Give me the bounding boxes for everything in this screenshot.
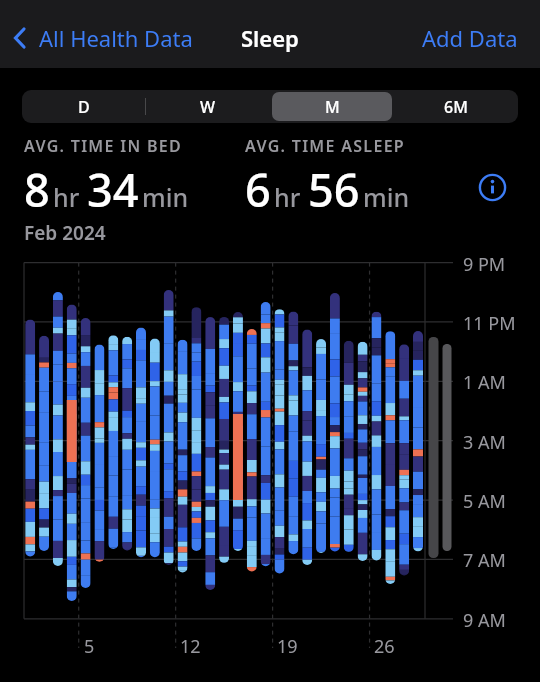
staticText: 8 <box>24 159 50 220</box>
staticText: min <box>363 180 410 214</box>
button[interactable]: All Health Data <box>13 23 193 53</box>
staticText: AVG. TIME IN BED <box>24 135 182 157</box>
button[interactable]: M <box>272 92 392 121</box>
staticText: 7 AM <box>463 548 506 573</box>
staticText: Sleep <box>241 23 299 53</box>
staticText: 9 PM <box>463 252 506 277</box>
staticText: 19 <box>277 634 298 659</box>
staticText: 26 <box>374 634 395 659</box>
staticText: AVG. TIME ASLEEP <box>245 135 406 157</box>
button[interactable]: W <box>148 92 268 121</box>
staticText: min <box>142 180 189 214</box>
staticText: 6M <box>444 96 468 118</box>
staticText: W <box>200 96 216 118</box>
staticText: 5 AM <box>463 489 506 514</box>
button[interactable]: 6M <box>396 92 516 121</box>
staticText: D <box>78 96 90 118</box>
staticText: hr <box>274 180 301 214</box>
button[interactable]: D <box>24 92 143 121</box>
staticText: 12 <box>180 634 201 659</box>
staticText: hr <box>53 180 80 214</box>
staticText: 3 AM <box>463 430 506 455</box>
staticText: 56 <box>308 159 360 220</box>
staticText: M <box>325 96 340 118</box>
staticText: 6 <box>245 159 271 220</box>
staticText: 34 <box>87 159 139 220</box>
staticText: 1 AM <box>463 370 506 395</box>
staticText: 9 AM <box>463 608 506 633</box>
staticText: Add Data <box>422 23 518 53</box>
staticText: 11 PM <box>463 311 516 336</box>
button[interactable]: Add Data <box>422 23 518 53</box>
staticText: All Health Data <box>39 23 193 53</box>
button[interactable] <box>478 173 507 202</box>
staticText: Feb 2024 <box>24 220 106 246</box>
staticText: 5 <box>84 634 95 659</box>
